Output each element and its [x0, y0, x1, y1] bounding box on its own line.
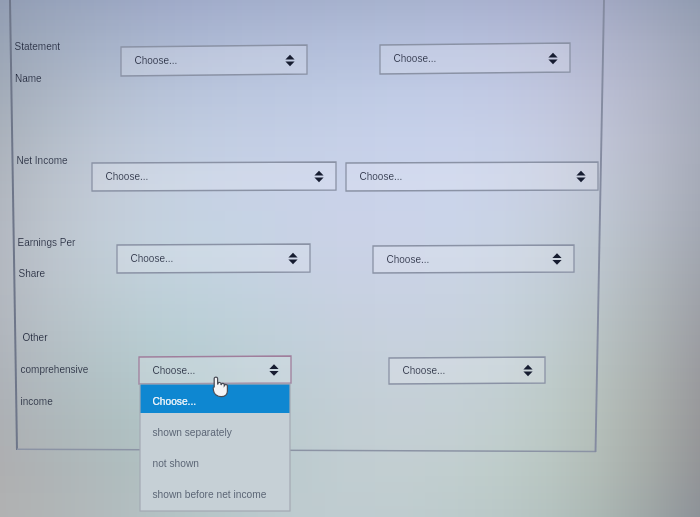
- button[interactable]: [0, 0, 700, 517]
